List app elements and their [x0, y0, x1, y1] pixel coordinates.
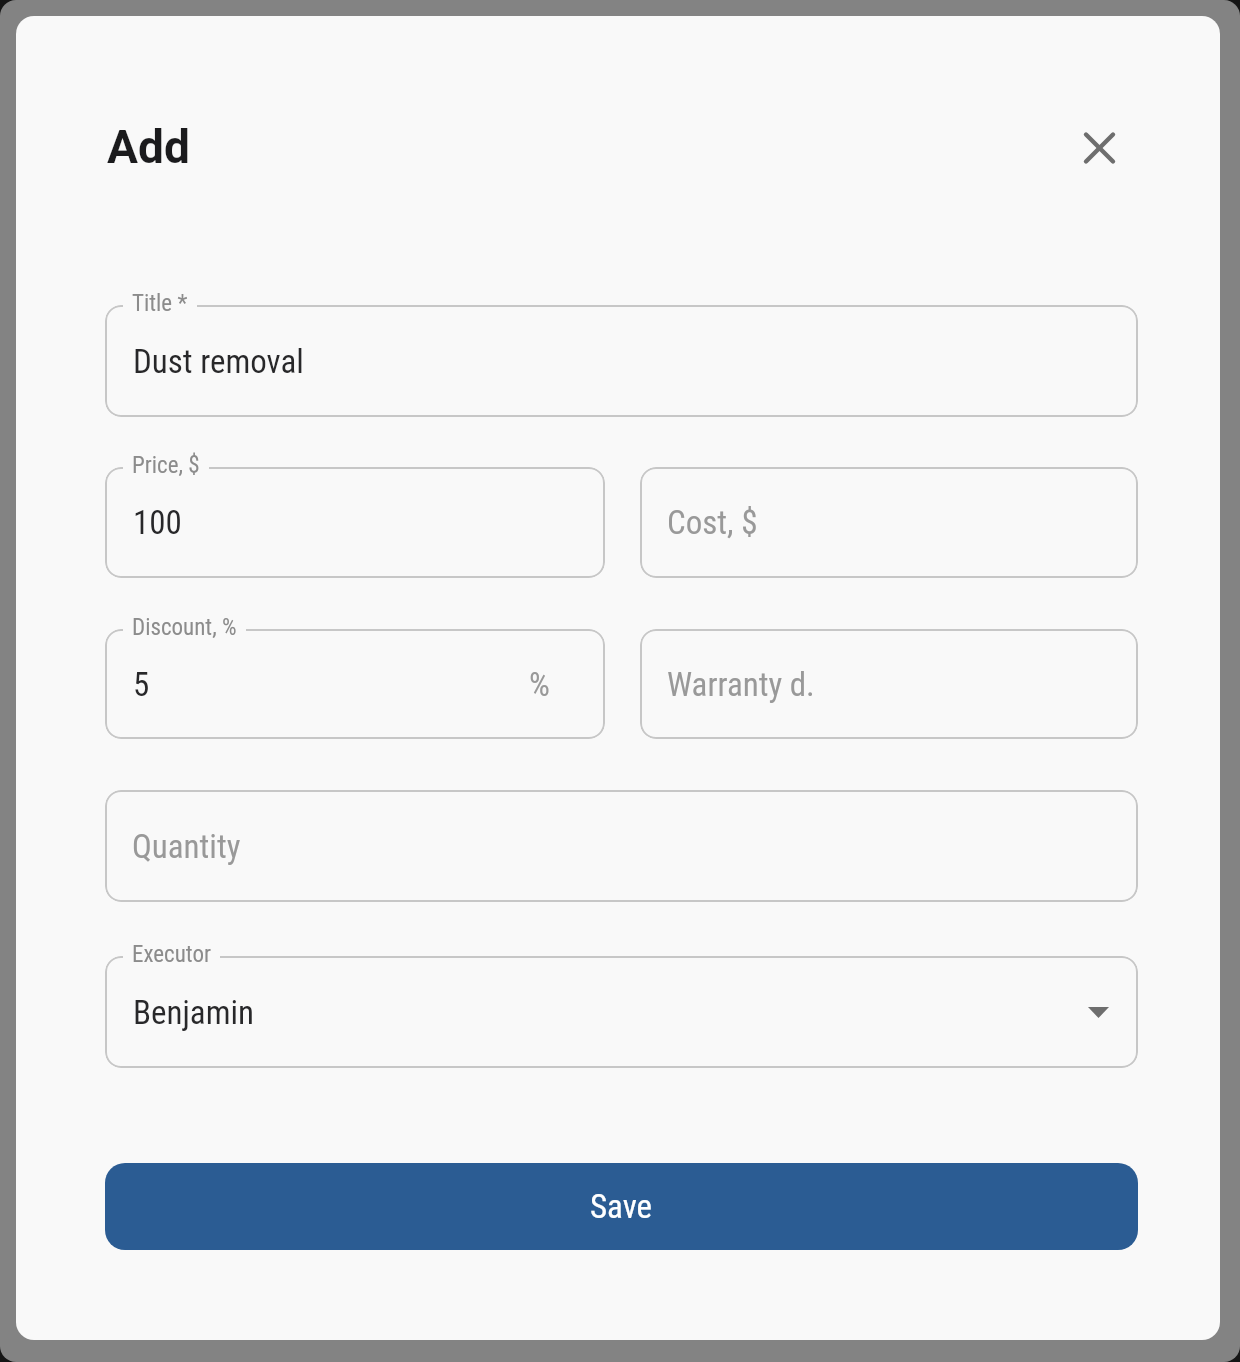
staticText: Cost, $	[667, 503, 758, 542]
button[interactable]: Benjamin	[105, 956, 1138, 1068]
button[interactable]	[1071, 119, 1127, 175]
button[interactable]: Save	[105, 1163, 1138, 1250]
staticText: %	[529, 665, 550, 704]
button[interactable]: Dust removal	[105, 305, 1138, 417]
staticText: Warranty d.	[667, 665, 815, 704]
button[interactable]: Cost, $	[640, 467, 1138, 578]
staticText: Dust removal	[133, 342, 304, 381]
staticText: 5	[133, 665, 150, 704]
button[interactable]: 100	[105, 467, 605, 578]
button[interactable]: Quantity	[105, 790, 1138, 902]
staticText: Save	[590, 1187, 653, 1226]
staticText: Benjamin	[133, 993, 255, 1032]
staticText: Discount, %	[132, 614, 237, 641]
staticText: Executor	[132, 941, 211, 968]
button[interactable]: 5	[105, 629, 605, 739]
staticText: Title *	[132, 290, 188, 317]
staticText: Price, $	[132, 452, 200, 479]
staticText: Quantity	[132, 827, 241, 866]
staticText: Add	[107, 120, 190, 174]
button[interactable]: Warranty d.	[640, 629, 1138, 739]
staticText: 100	[133, 503, 182, 542]
